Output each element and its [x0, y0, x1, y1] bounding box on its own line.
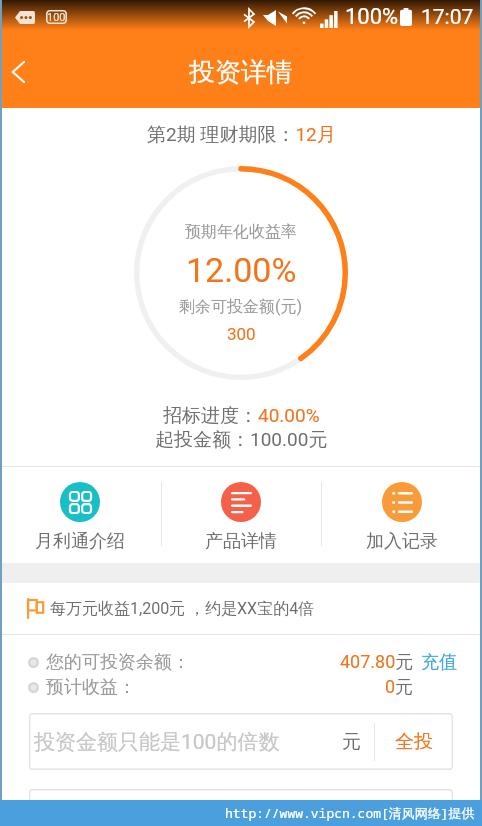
button[interactable]: 每万元收益1,200元 ，约是XX宝的4倍 — [26, 583, 482, 634]
staticText: 投资详情 — [189, 56, 293, 89]
staticText: 全投 — [395, 730, 433, 754]
staticText: 加入记录 — [366, 530, 438, 553]
staticText: 起投金额：100.00元 — [155, 428, 328, 452]
staticText: 预期年化收益率 — [185, 222, 297, 242]
button[interactable]: 月利通介绍 — [0, 467, 160, 563]
staticText: 12.00% — [186, 250, 297, 290]
button[interactable]: 加入记录 — [321, 467, 482, 563]
button[interactable]: 产品详情 — [160, 467, 321, 563]
staticText: 投资金额只能是100的倍数 — [34, 729, 280, 755]
button[interactable]: 充值 — [421, 651, 457, 673]
staticText: 100% — [345, 4, 399, 30]
staticText: 300 — [227, 324, 256, 344]
staticText: 您的可投资余额： — [46, 651, 190, 673]
staticText: 预计收益： — [46, 676, 136, 698]
staticText: 月利通介绍 — [35, 530, 125, 553]
staticText: 元 — [342, 730, 361, 754]
staticText: 第2期 理财期限：12月 — [147, 123, 336, 147]
staticText: 407.80元 — [340, 651, 414, 673]
staticText: 招标进度：40.00% — [163, 404, 320, 428]
staticText: 每万元收益1,200元 ，约是XX宝的4倍 — [50, 599, 315, 619]
staticText: 17:07 — [421, 5, 474, 30]
button[interactable]: Back — [0, 50, 38, 94]
staticText: http://www.vipcn.com[清风网络]提供 — [225, 804, 475, 822]
staticText: 充值 — [421, 651, 457, 673]
staticText: 剩余可投金额(元) — [179, 297, 303, 317]
staticText: 0元 — [385, 676, 414, 698]
button[interactable]: 全投 — [375, 713, 453, 770]
staticText: 产品详情 — [205, 530, 277, 553]
staticText: 100 — [47, 11, 66, 24]
